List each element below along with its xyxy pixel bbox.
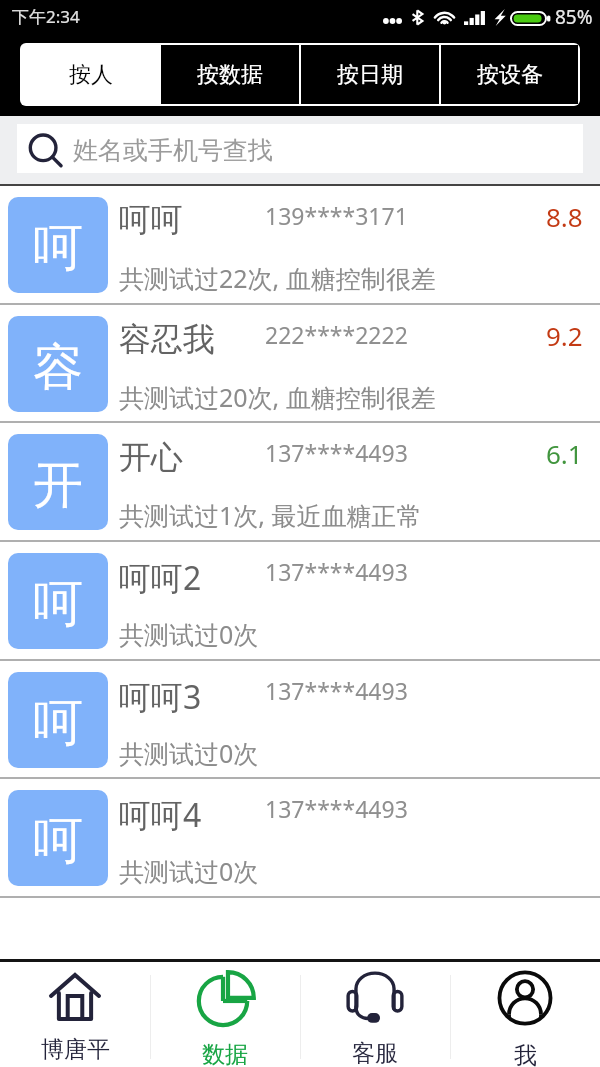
staticText: 呵 bbox=[33, 692, 83, 755]
button[interactable]: 博唐平 bbox=[0, 959, 150, 1067]
staticText: 8.8 bbox=[546, 199, 583, 234]
staticText: 呵呵 bbox=[119, 200, 183, 240]
button[interactable]: 容 bbox=[0, 305, 600, 422]
staticText: 137****4493 bbox=[265, 675, 408, 706]
staticText: 共测试过1次, 最近血糖正常 bbox=[119, 498, 422, 532]
button[interactable]: 按日期 bbox=[301, 45, 439, 104]
staticText: 85% bbox=[555, 4, 593, 30]
button[interactable]: 客服 bbox=[300, 959, 450, 1067]
staticText: 共测试过0次 bbox=[119, 736, 259, 770]
staticText: 共测试过0次 bbox=[119, 617, 259, 651]
button[interactable]: 按设备 bbox=[441, 45, 578, 104]
staticText: 137****4493 bbox=[265, 437, 408, 468]
staticText: 按数据 bbox=[197, 61, 263, 89]
staticText: 6.1 bbox=[546, 436, 583, 471]
button[interactable]: 姓名或手机号查找 bbox=[17, 124, 583, 173]
staticText: 共测试过0次 bbox=[119, 854, 259, 888]
button[interactable]: 按人 bbox=[22, 45, 159, 104]
staticText: 呵呵4 bbox=[119, 793, 202, 837]
staticText: 呵 bbox=[33, 217, 83, 280]
staticText: 按日期 bbox=[337, 61, 403, 89]
other: More bbox=[383, 18, 402, 24]
staticText: 222****2222 bbox=[265, 319, 408, 350]
staticText: 呵 bbox=[33, 810, 83, 873]
staticText: 我 bbox=[514, 1041, 537, 1067]
staticText: 呵呵2 bbox=[119, 556, 202, 600]
button[interactable]: 呵 bbox=[0, 779, 600, 896]
button[interactable]: 按数据 bbox=[161, 45, 299, 104]
staticText: 开心 bbox=[119, 437, 183, 477]
staticText: 客服 bbox=[352, 1039, 398, 1067]
staticText: 按人 bbox=[69, 61, 113, 89]
staticText: 呵 bbox=[33, 573, 83, 636]
staticText: 姓名或手机号查找 bbox=[73, 135, 273, 166]
staticText: 下午2:34 bbox=[12, 5, 80, 28]
button[interactable]: 呵 bbox=[0, 661, 600, 778]
staticText: 共测试过22次, 血糖控制很差 bbox=[119, 261, 436, 295]
staticText: 137****4493 bbox=[265, 556, 408, 587]
button[interactable]: 开 bbox=[0, 423, 600, 540]
staticText: 137****4493 bbox=[265, 793, 408, 824]
staticText: 容忍我 bbox=[119, 319, 215, 359]
staticText: 共测试过20次, 血糖控制很差 bbox=[119, 380, 436, 414]
button[interactable]: 我 bbox=[450, 959, 600, 1067]
staticText: 容 bbox=[33, 336, 83, 399]
staticText: 呵呵3 bbox=[119, 675, 202, 719]
staticText: 开 bbox=[33, 454, 83, 517]
staticText: 139****3171 bbox=[265, 200, 408, 231]
button[interactable]: 呵 bbox=[0, 186, 600, 303]
staticText: 9.2 bbox=[546, 318, 583, 353]
staticText: 数据 bbox=[202, 1040, 248, 1067]
staticText: 按设备 bbox=[477, 61, 543, 89]
button[interactable]: 数据 bbox=[150, 959, 300, 1067]
staticText: 博唐平 bbox=[41, 1035, 110, 1064]
button[interactable]: 呵 bbox=[0, 542, 600, 659]
